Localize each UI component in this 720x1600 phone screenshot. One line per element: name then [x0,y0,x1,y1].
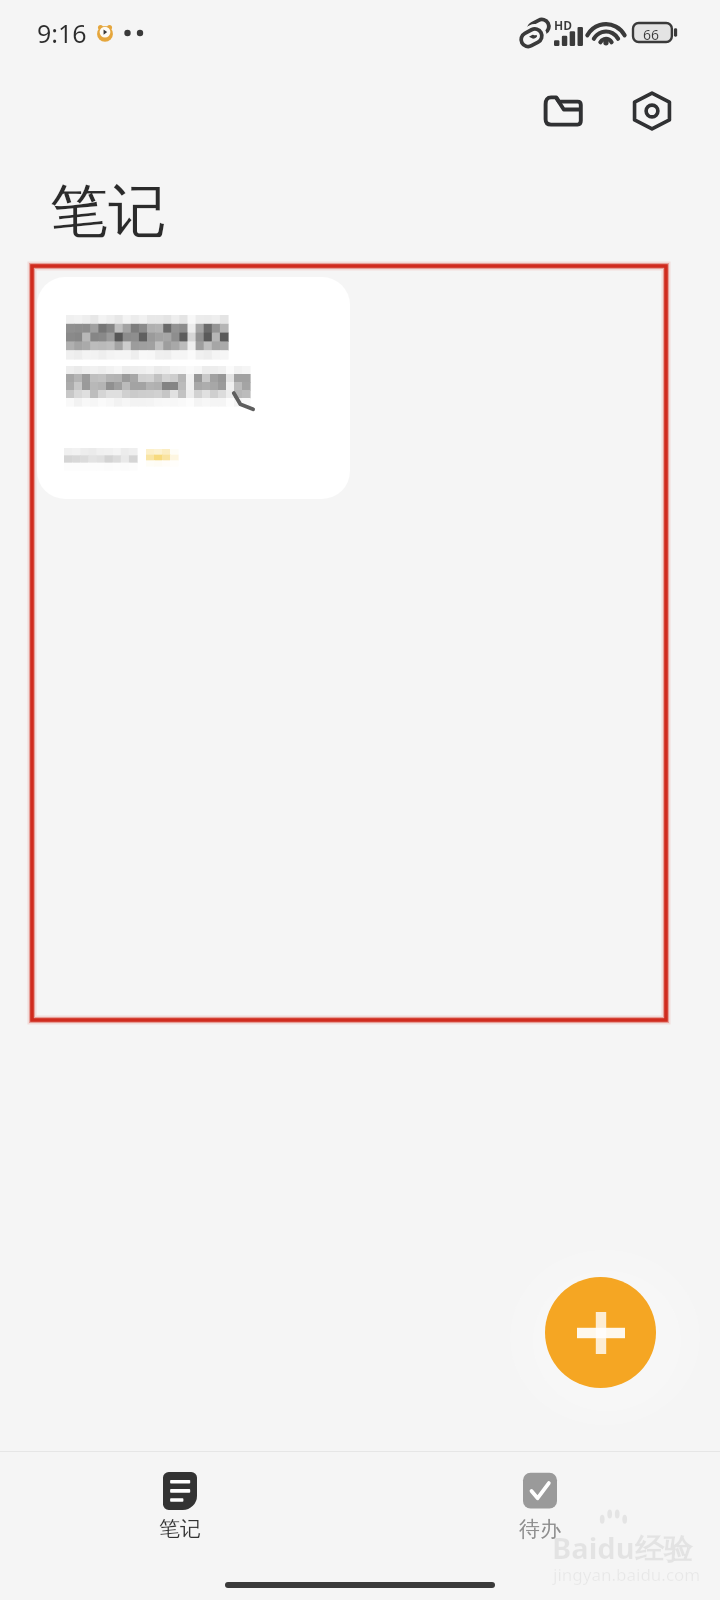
button[interactable] [37,277,350,499]
staticText: HD [554,17,572,33]
staticText: 66 [643,25,660,44]
staticText: 笔记 [50,175,166,248]
button[interactable]: Folders [533,81,593,141]
button[interactable]: 笔记 [0,1452,360,1542]
staticText: 笔记 [159,1516,201,1542]
staticText: 待办 [519,1516,561,1542]
button[interactable]: Settings [622,81,682,141]
button[interactable]: 待办 [360,1452,720,1542]
staticText: 9:16 [37,16,87,50]
staticText: jingyan.baidu.com [553,1563,701,1586]
button[interactable]: New note [545,1277,656,1388]
staticText: Baidu经验 [552,1528,693,1568]
